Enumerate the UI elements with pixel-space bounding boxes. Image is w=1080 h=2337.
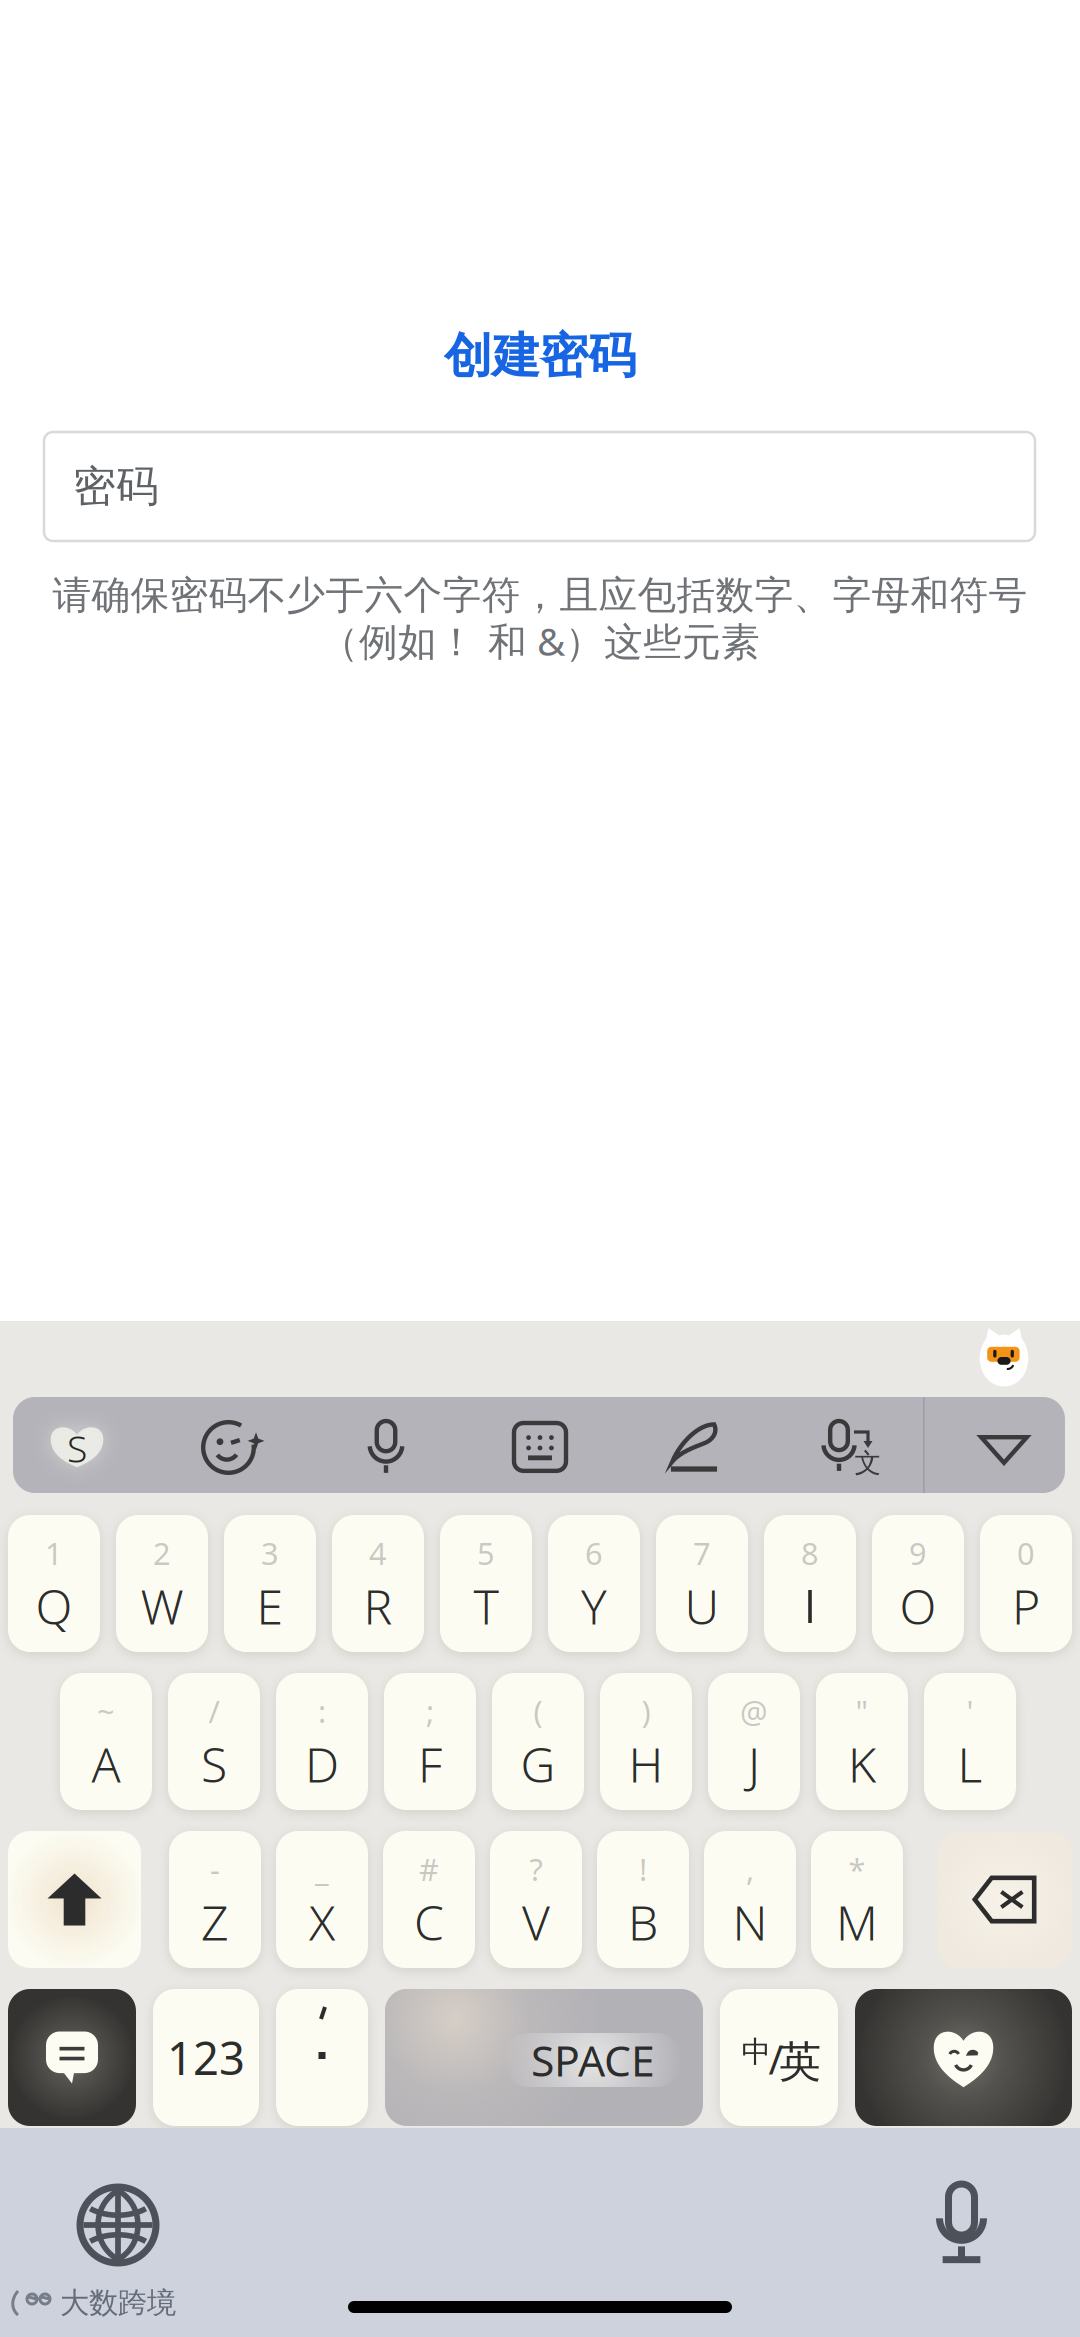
button[interactable]: 8 [764,1515,856,1652]
staticText: P [1012,1574,1040,1638]
staticText: 文 [854,1447,881,1479]
button[interactable]: 0 [980,1515,1072,1652]
staticText: Q [35,1574,72,1638]
button[interactable]: 7 [656,1515,748,1652]
button[interactable]: ? [490,1831,582,1968]
button[interactable]: Handwriting [670,1422,718,1470]
staticText: A [91,1732,120,1796]
button[interactable]: Hide keyboard [979,1435,1029,1465]
staticText: O [899,1574,936,1638]
staticText: , [746,1849,754,1889]
staticText: U [684,1574,719,1638]
staticText: ; [426,1691,434,1731]
staticText: SPACE [531,2032,655,2088]
button[interactable]: " [816,1673,908,1810]
button[interactable]: _ [276,1831,368,1968]
button[interactable]: 5 [440,1515,532,1652]
button[interactable]: Keyboard theme [974,1327,1034,1387]
button[interactable]: Emoji [201,1420,267,1475]
staticText: 1 [45,1533,63,1573]
staticText: ( [533,1691,542,1731]
staticText: L [957,1732,982,1796]
button[interactable]: 3 [224,1515,316,1652]
button[interactable]: @ [708,1673,800,1810]
button[interactable]: ; [384,1673,476,1810]
staticText: 9 [909,1533,927,1573]
staticText: D [305,1732,339,1796]
staticText: ? [529,1849,542,1889]
button[interactable]: 密码 [44,432,1035,541]
button[interactable]: 9 [872,1515,964,1652]
button[interactable]: Dictation [936,2184,987,2262]
staticText: / [768,2032,783,2085]
button[interactable]: Period [276,1989,368,2126]
staticText: （例如！ 和 &）这些元素 [320,615,760,666]
staticText: V [522,1890,550,1954]
button[interactable]: 6 [548,1515,640,1652]
staticText: * [848,1849,865,1889]
button[interactable]: 中 [720,1989,838,2126]
staticText: - [210,1849,220,1889]
button[interactable]: SPACE [385,1989,703,2126]
staticText: ' [966,1691,973,1731]
staticText: 中 [741,2034,770,2070]
staticText: Z [201,1890,229,1954]
button[interactable]: Shift [8,1831,141,1968]
button[interactable]: Keyboard layout [514,1423,566,1471]
button[interactable]: Enter [855,1989,1072,2126]
staticText: ) [641,1691,650,1731]
staticText: C [414,1890,444,1954]
staticText: " [855,1691,868,1731]
staticText: R [363,1574,392,1638]
staticText: G [520,1732,555,1796]
staticText: 6 [585,1533,603,1573]
button[interactable]: 123 [153,1989,259,2126]
staticText: ! [639,1849,647,1889]
staticText: 5 [477,1533,495,1573]
staticText: / [208,1691,219,1731]
button[interactable]: Symbols [8,1989,136,2126]
button[interactable]: Voice input [364,1421,408,1475]
staticText: 英 [778,2036,821,2088]
button[interactable]: ) [600,1673,692,1810]
button[interactable]: Skin [49,1420,105,1476]
staticText: _ [315,1849,329,1889]
staticText: 3 [261,1533,279,1573]
staticText: K [848,1732,876,1796]
staticText: 0 [1017,1533,1035,1573]
staticText: M [836,1890,878,1954]
button[interactable]: ( [492,1673,584,1810]
button[interactable]: ! [597,1831,689,1968]
staticText: X [309,1890,335,1954]
button[interactable]: - [169,1831,261,1968]
staticText: 2 [153,1533,171,1573]
staticText: 请确保密码不少于六个字符，且应包括数字、字母和符号 [52,572,1027,619]
button[interactable]: : [276,1673,368,1810]
button[interactable]: 2 [116,1515,208,1652]
button[interactable]: Switch keyboard [80,2187,156,2263]
staticText: S [67,1423,87,1473]
staticText: J [748,1732,760,1796]
staticText: T [473,1574,498,1638]
button[interactable]: ~ [60,1673,152,1810]
button[interactable]: 1 [8,1515,100,1652]
button[interactable]: * [811,1831,903,1968]
staticText: 7 [693,1533,711,1573]
button[interactable]: Voice translate [818,1421,882,1477]
staticText: ~ [97,1691,115,1731]
staticText: S [201,1732,227,1796]
staticText: 大数跨境 [60,2285,176,2321]
button[interactable]: # [383,1831,475,1968]
button[interactable]: , [704,1831,796,1968]
button[interactable]: 4 [332,1515,424,1652]
staticText: @ [740,1691,768,1731]
staticText: 4 [369,1533,387,1573]
staticText: E [256,1574,283,1638]
button[interactable]: Delete [937,1831,1072,1968]
button[interactable]: ' [924,1673,1016,1810]
staticText: Y [581,1574,607,1638]
staticText: H [628,1732,663,1796]
button[interactable]: / [168,1673,260,1810]
staticText: F [418,1732,442,1796]
staticText: : [318,1691,326,1731]
